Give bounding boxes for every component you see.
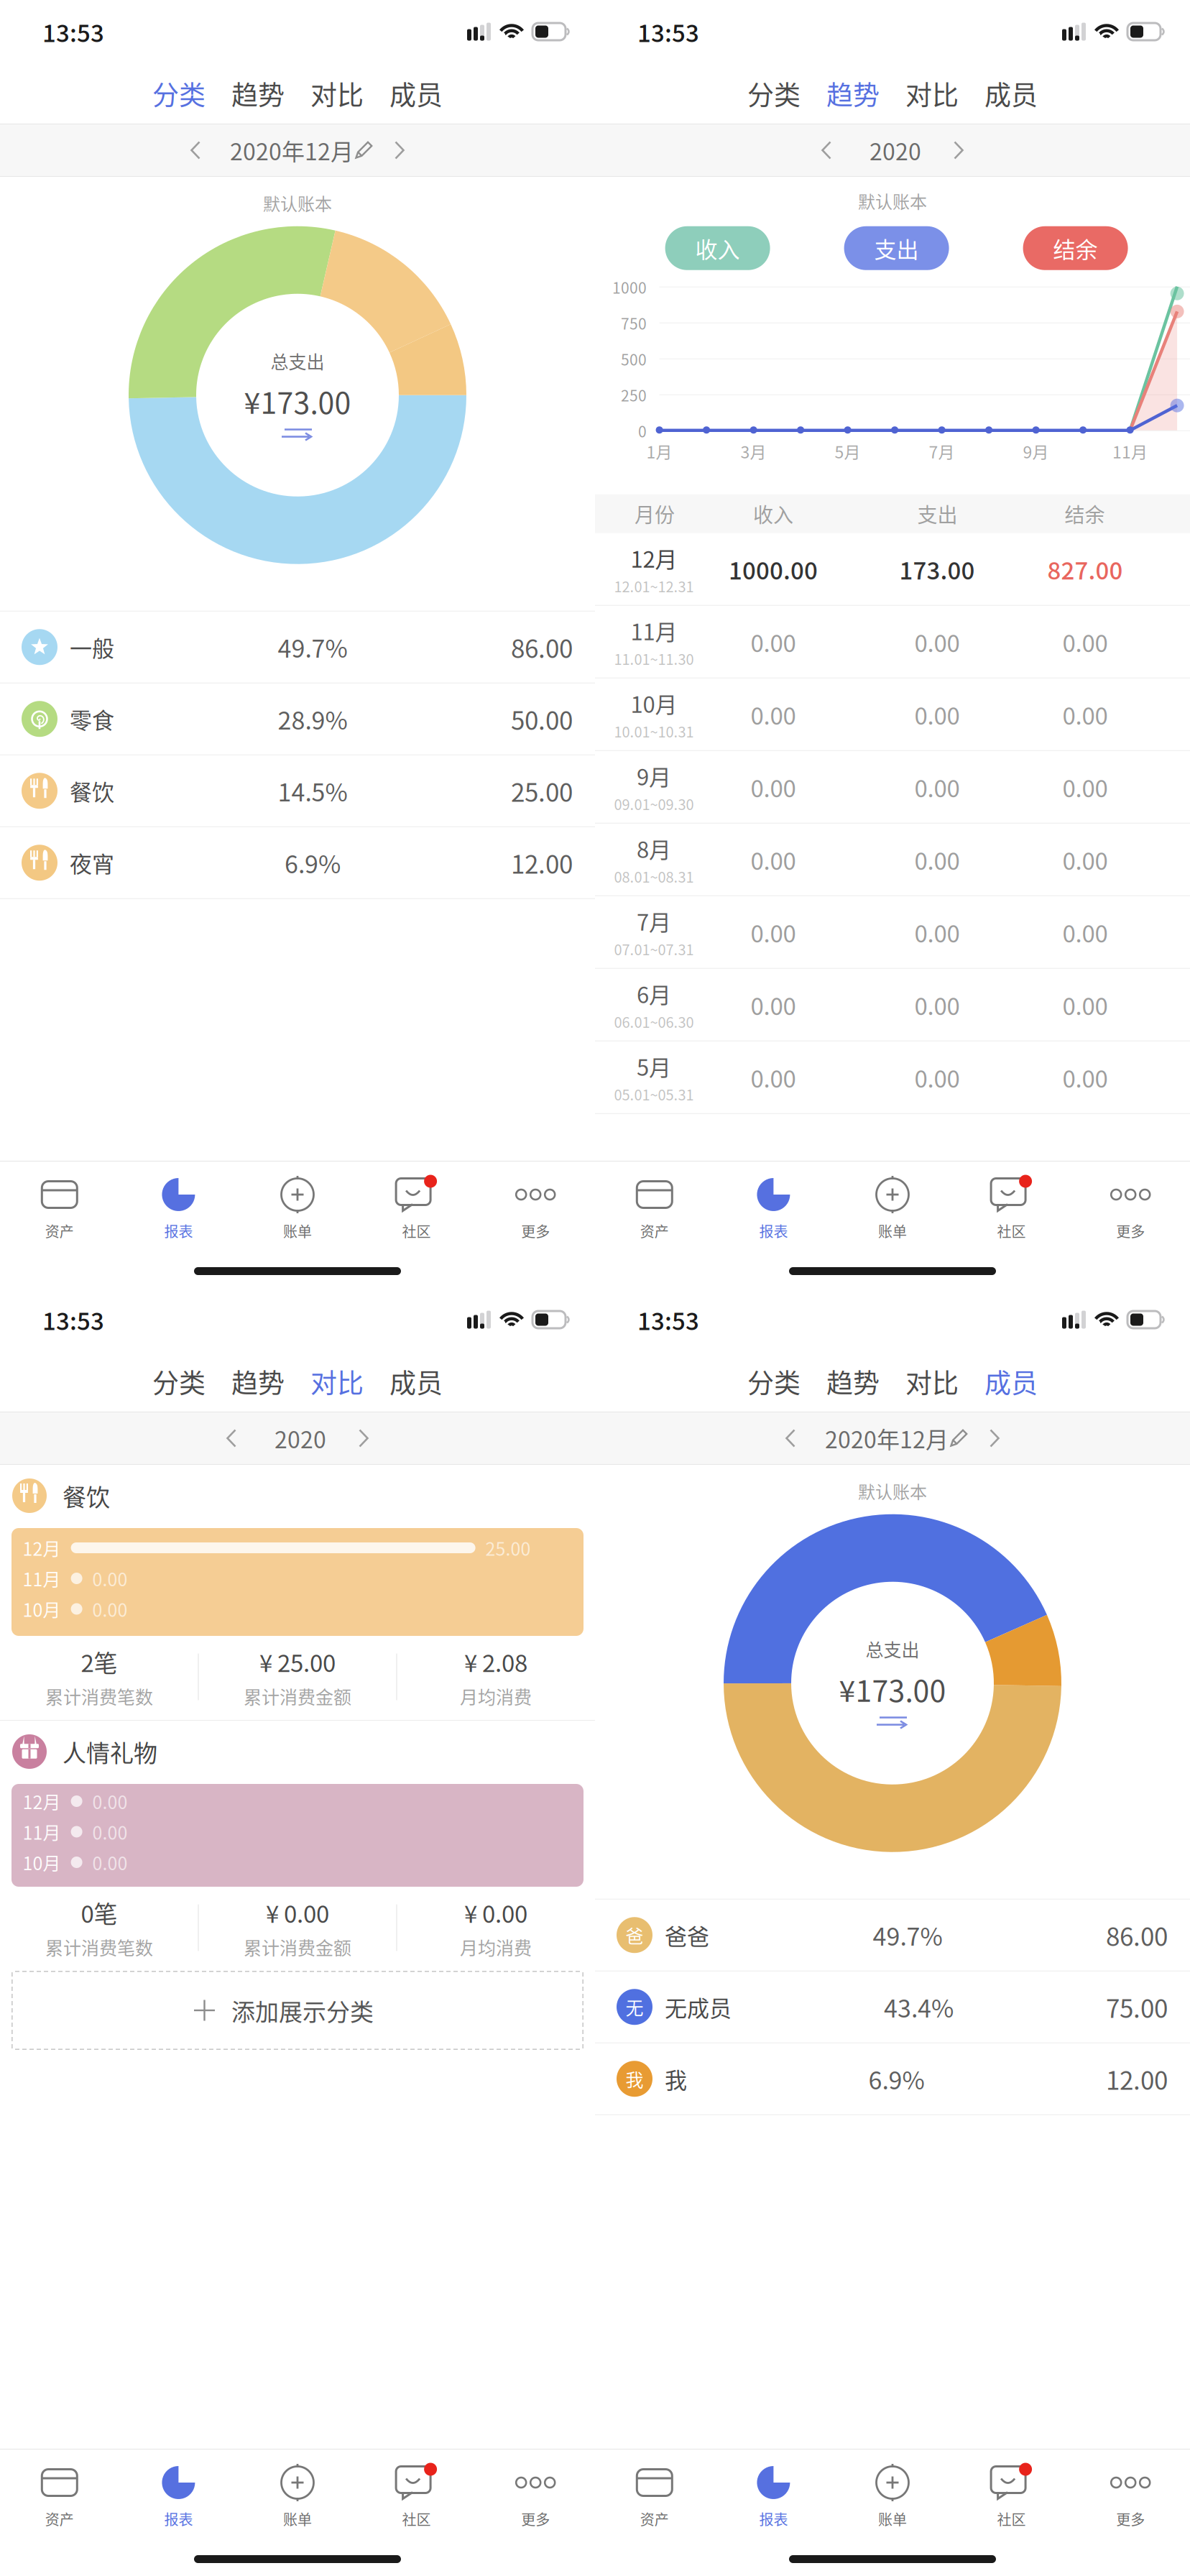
- button[interactable]: Previous period: [216, 1412, 247, 1464]
- staticText: 添加展示分类: [231, 1993, 374, 2028]
- button[interactable]: 更多: [476, 2449, 595, 2537]
- button[interactable]: Next period: [384, 124, 415, 176]
- button[interactable]: 账单: [833, 1161, 952, 1249]
- staticText: 10月: [23, 1849, 61, 1875]
- button[interactable]: 成员: [972, 1351, 1051, 1412]
- button[interactable]: 趋势: [218, 63, 297, 124]
- button[interactable]: 趋势: [813, 1351, 892, 1412]
- staticText: 支出: [917, 499, 958, 528]
- staticText: 500: [621, 348, 647, 370]
- button[interactable]: 2020年12月: [825, 1412, 969, 1464]
- button[interactable]: 报表: [714, 1161, 833, 1249]
- staticText: 我: [665, 2063, 687, 2095]
- button[interactable]: 我: [595, 2043, 1190, 2115]
- button[interactable]: 报表: [119, 2449, 238, 2537]
- button[interactable]: 资产: [0, 1161, 119, 1249]
- staticText: 趋势: [826, 1362, 880, 1401]
- button[interactable]: Next period: [979, 1412, 1010, 1464]
- button[interactable]: 2020: [275, 1412, 326, 1464]
- button[interactable]: 对比: [297, 1351, 377, 1412]
- staticText: 对比: [905, 1362, 959, 1401]
- staticText: 1000: [612, 276, 647, 298]
- button[interactable]: Previous period: [775, 1412, 806, 1464]
- staticText: ¥173.00: [244, 380, 351, 422]
- button[interactable]: 2020年12月: [230, 124, 374, 176]
- button[interactable]: 分类: [139, 63, 218, 124]
- button[interactable]: 零食: [0, 683, 595, 755]
- staticText: 0.00: [751, 915, 796, 949]
- staticText: ¥ 0.00: [266, 1895, 329, 1930]
- button[interactable]: 趋势: [813, 63, 892, 124]
- staticText: 86.00: [511, 629, 573, 665]
- button[interactable]: 对比: [892, 63, 972, 124]
- staticText: 餐饮: [63, 1479, 110, 1513]
- staticText: 14.5%: [278, 773, 347, 808]
- button[interactable]: 分类: [734, 63, 813, 124]
- staticText: 账单: [878, 2508, 907, 2529]
- staticText: 28.9%: [278, 701, 347, 737]
- button[interactable]: 账单: [238, 2449, 357, 2537]
- staticText: 趋势: [231, 74, 285, 113]
- button[interactable]: 收入: [665, 226, 770, 270]
- staticText: 餐饮: [70, 775, 114, 807]
- button[interactable]: 社区: [357, 2449, 476, 2537]
- button[interactable]: 资产: [595, 2449, 714, 2537]
- button[interactable]: 社区: [357, 1161, 476, 1249]
- button[interactable]: Next period: [943, 124, 974, 176]
- button[interactable]: 账单: [238, 1161, 357, 1249]
- button[interactable]: 报表: [119, 1161, 238, 1249]
- button[interactable]: 支出: [844, 226, 949, 270]
- staticText: 0.00: [1062, 770, 1108, 804]
- staticText: 0.00: [1062, 987, 1108, 1022]
- staticText: 收入: [695, 232, 740, 264]
- button[interactable]: 更多: [1071, 1161, 1190, 1249]
- staticText: 1月: [646, 439, 672, 463]
- button[interactable]: 成员: [377, 1351, 456, 1412]
- button[interactable]: 更多: [476, 1161, 595, 1249]
- button[interactable]: 餐饮: [0, 755, 595, 827]
- staticText: 结余: [1065, 499, 1105, 528]
- button[interactable]: 爸: [595, 1900, 1190, 1971]
- staticText: 0.00: [914, 915, 960, 949]
- button[interactable]: 对比: [892, 1351, 972, 1412]
- staticText: 0.00: [751, 1060, 796, 1094]
- staticText: 86.00: [1106, 1917, 1168, 1953]
- staticText: 12.00: [1106, 2061, 1168, 2097]
- button[interactable]: 成员: [377, 63, 456, 124]
- staticText: 分类: [152, 1362, 206, 1401]
- button[interactable]: 夜宵: [0, 827, 595, 899]
- button[interactable]: Next period: [348, 1412, 379, 1464]
- button[interactable]: 成员: [972, 63, 1051, 124]
- button[interactable]: 社区: [952, 1161, 1071, 1249]
- button[interactable]: 无: [595, 1971, 1190, 2043]
- staticText: 6.9%: [285, 845, 341, 880]
- staticText: 0.00: [92, 1849, 128, 1875]
- button[interactable]: 趋势: [218, 1351, 297, 1412]
- button[interactable]: 分类: [139, 1351, 218, 1412]
- button[interactable]: Previous period: [180, 124, 211, 176]
- staticText: 827.00: [1047, 552, 1123, 586]
- button[interactable]: 社区: [952, 2449, 1071, 2537]
- staticText: 10月: [23, 1596, 61, 1622]
- staticText: 0.00: [751, 697, 796, 731]
- button[interactable]: 添加展示分类: [11, 1971, 584, 2050]
- staticText: 0.00: [1062, 915, 1108, 949]
- button[interactable]: 资产: [0, 2449, 119, 2537]
- button[interactable]: 2020: [870, 124, 921, 176]
- button[interactable]: 更多: [1071, 2449, 1190, 2537]
- button[interactable]: 一般: [0, 612, 595, 683]
- staticText: 25.00: [485, 1535, 531, 1561]
- staticText: 资产: [45, 2508, 74, 2529]
- button[interactable]: 报表: [714, 2449, 833, 2537]
- staticText: 默认账本: [858, 188, 927, 213]
- button[interactable]: 对比: [297, 63, 377, 124]
- button[interactable]: 分类: [734, 1351, 813, 1412]
- button[interactable]: Previous period: [811, 124, 842, 176]
- button[interactable]: 账单: [833, 2449, 952, 2537]
- staticText: 0.00: [914, 625, 960, 659]
- staticText: 累计消费笔数: [45, 1934, 153, 1960]
- staticText: 0.00: [914, 770, 960, 804]
- button[interactable]: 结余: [1023, 226, 1128, 270]
- staticText: 13:53: [637, 1302, 699, 1337]
- button[interactable]: 资产: [595, 1161, 714, 1249]
